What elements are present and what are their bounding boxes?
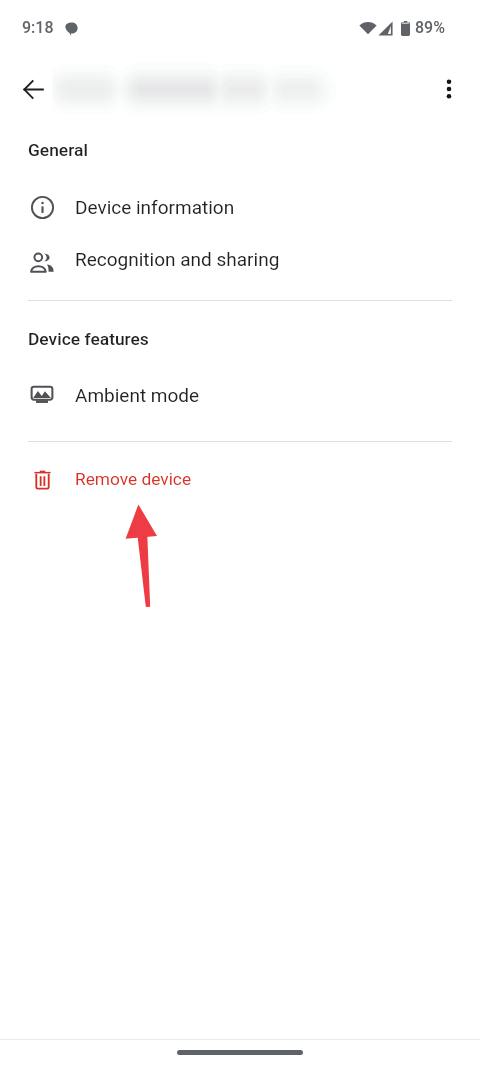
button[interactable]: Recognition and sharing	[0, 233, 480, 285]
staticText: Remove device	[75, 469, 192, 489]
staticText: 89%	[415, 18, 445, 37]
button[interactable]: Remove device	[0, 453, 480, 505]
staticText: Device features	[28, 329, 149, 349]
staticText: Ambient mode	[75, 384, 200, 406]
button[interactable]: Ambient mode	[0, 369, 480, 421]
staticText: Device information	[75, 196, 235, 218]
staticText: 9:18	[22, 18, 54, 37]
button[interactable]: More options	[425, 65, 473, 113]
staticText: General	[28, 140, 88, 160]
button[interactable]: Device information	[0, 181, 480, 233]
staticText: Recognition and sharing	[75, 248, 280, 270]
button[interactable]: Back	[9, 65, 57, 113]
